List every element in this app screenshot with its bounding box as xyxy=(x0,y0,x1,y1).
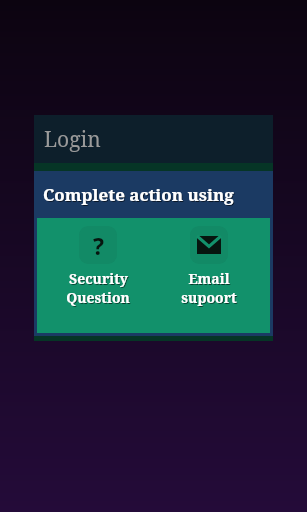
staticText: ? xyxy=(93,230,104,261)
staticText: Complete action using xyxy=(44,184,235,207)
staticText: Email xyxy=(189,270,231,289)
staticText: Question xyxy=(66,288,130,307)
staticText: Login xyxy=(44,125,101,154)
staticText: supoort xyxy=(181,288,237,307)
staticText: Security xyxy=(69,269,128,288)
staticText: Security xyxy=(70,270,129,289)
button[interactable]: Security Question xyxy=(48,218,148,307)
staticText: Complete action using xyxy=(43,183,234,206)
staticText: supoort xyxy=(182,289,238,308)
button[interactable]: Email supoort xyxy=(159,218,259,307)
staticText: Email xyxy=(188,269,230,288)
staticText: Question xyxy=(67,289,131,308)
